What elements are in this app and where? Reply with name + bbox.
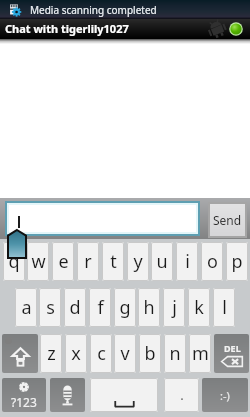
staticText: x (71, 341, 81, 366)
button[interactable]: u (151, 242, 173, 281)
staticText: v (120, 341, 130, 366)
staticText: r (84, 249, 92, 274)
button[interactable]: i (176, 242, 198, 281)
button[interactable]: f (89, 288, 111, 327)
button[interactable]: p (226, 242, 248, 281)
staticText: o (207, 249, 218, 274)
button[interactable]: v (114, 334, 136, 373)
staticText: j (172, 295, 177, 320)
staticText: t (110, 249, 117, 274)
button[interactable]: Space (90, 378, 158, 412)
staticText: :-) (220, 388, 230, 403)
staticText: u (156, 249, 168, 274)
staticText: b (144, 341, 156, 366)
button[interactable]: Send (210, 204, 245, 236)
button[interactable]: q (3, 242, 25, 281)
button[interactable]: Shift (2, 334, 38, 373)
button[interactable]: d (64, 288, 86, 327)
staticText: k (194, 295, 204, 320)
staticText: h (143, 295, 155, 320)
staticText: f (97, 295, 104, 320)
button[interactable]: h (138, 288, 160, 327)
staticText: n (169, 341, 181, 366)
button[interactable]: a (15, 288, 37, 327)
button[interactable]: e (52, 242, 74, 281)
staticText: w (31, 249, 46, 274)
button[interactable]: s (39, 288, 61, 327)
button[interactable]: k (188, 288, 210, 327)
staticText: . (180, 386, 184, 404)
button[interactable]: Voice input (50, 378, 85, 412)
staticText: z (47, 341, 56, 366)
staticText: Send (213, 212, 242, 228)
staticText: c (97, 341, 106, 366)
staticText: DEL (224, 342, 241, 354)
button[interactable]: y (127, 242, 149, 281)
button[interactable]: z (40, 334, 62, 373)
staticText: y (133, 249, 143, 274)
button[interactable]: Delete (214, 334, 249, 373)
staticText: g (119, 295, 131, 320)
button[interactable]: w (27, 242, 49, 281)
staticText: m (192, 341, 209, 366)
button[interactable]: ?123 (2, 378, 46, 412)
button[interactable]: j (163, 288, 185, 327)
staticText: p (231, 249, 243, 274)
button[interactable]: l (213, 288, 235, 327)
staticText: d (69, 295, 81, 320)
staticText: Media scanning completed (30, 3, 157, 17)
staticText: a (21, 295, 32, 320)
button[interactable]: c (90, 334, 112, 373)
staticText: Chat with tigerlily1027 (5, 21, 129, 36)
button[interactable]: t (102, 242, 124, 281)
staticText: ?123 (11, 394, 37, 410)
button[interactable]: n (164, 334, 186, 373)
button[interactable]: b (139, 334, 161, 373)
button[interactable]: r (77, 242, 99, 281)
button[interactable] (9, 205, 196, 232)
staticText: i (185, 249, 190, 274)
button[interactable]: o (201, 242, 223, 281)
button[interactable]: Online status (229, 22, 243, 36)
staticText: s (46, 295, 55, 320)
button[interactable]: :-) (202, 378, 248, 412)
button[interactable]: m (189, 334, 211, 373)
staticText: q (8, 249, 20, 274)
button[interactable]: g (114, 288, 136, 327)
staticText: e (58, 249, 69, 274)
staticText: l (222, 295, 227, 320)
button[interactable]: . (164, 378, 199, 412)
button[interactable]: x (65, 334, 87, 373)
